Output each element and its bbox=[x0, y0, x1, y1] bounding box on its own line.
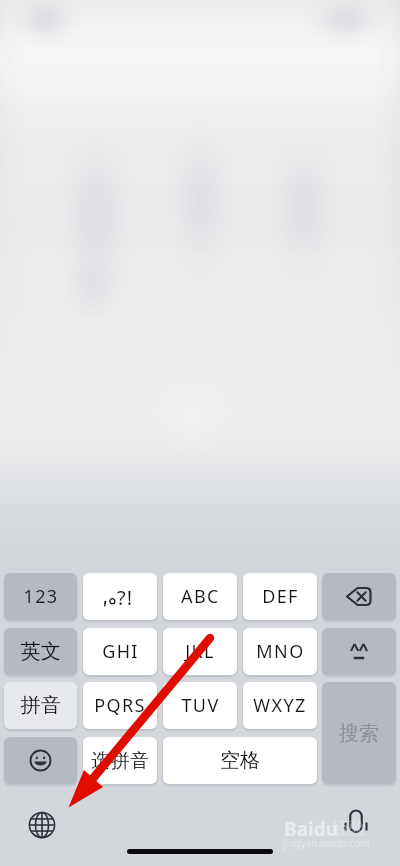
staticText: Baidu bbox=[284, 816, 339, 842]
button[interactable]: 选拼音 bbox=[83, 737, 157, 784]
staticText: 搜索 bbox=[339, 721, 379, 746]
staticText: 123 bbox=[23, 584, 59, 609]
button[interactable]: MNO bbox=[243, 628, 317, 675]
button[interactable]: DEF bbox=[243, 573, 317, 620]
staticText: MNO bbox=[256, 639, 305, 664]
staticText: TUV bbox=[181, 693, 220, 718]
button[interactable]: JKL bbox=[163, 628, 237, 675]
button[interactable]: WXYZ bbox=[243, 682, 317, 729]
staticText: 拼音 bbox=[20, 693, 62, 718]
button[interactable]: Switch keyboard bbox=[24, 807, 60, 843]
staticText: 空格 bbox=[220, 748, 260, 773]
button[interactable]: Kaomoji bbox=[322, 628, 396, 675]
staticText: 经验 bbox=[332, 818, 366, 839]
button[interactable]: 123 bbox=[4, 573, 77, 620]
staticText: ABC bbox=[181, 584, 220, 609]
button[interactable]: 英文 bbox=[4, 628, 77, 675]
button[interactable]: 拼音 bbox=[4, 682, 77, 729]
button[interactable]: 搜索 bbox=[322, 682, 396, 784]
staticText: GHI bbox=[102, 639, 139, 664]
staticText: jingyan.baidu.com bbox=[283, 836, 370, 850]
staticText: 选拼音 bbox=[91, 749, 150, 773]
staticText: ?! bbox=[117, 584, 134, 610]
staticText: DEF bbox=[262, 584, 299, 609]
button[interactable]: Voice input bbox=[338, 803, 374, 839]
button[interactable]: GHI bbox=[83, 628, 157, 675]
staticText: 英文 bbox=[20, 639, 62, 664]
button[interactable]: 空格 bbox=[163, 737, 317, 784]
button[interactable]: Delete bbox=[322, 573, 396, 620]
staticText: PQRS bbox=[94, 693, 146, 718]
button[interactable]: Emoji bbox=[4, 737, 77, 784]
staticText: WXYZ bbox=[253, 693, 307, 718]
button[interactable]: ABC bbox=[163, 573, 237, 620]
button[interactable]: PQRS bbox=[83, 682, 157, 729]
button[interactable]: TUV bbox=[163, 682, 237, 729]
staticText: JKL bbox=[185, 639, 215, 664]
button[interactable]: ?! bbox=[83, 573, 157, 620]
